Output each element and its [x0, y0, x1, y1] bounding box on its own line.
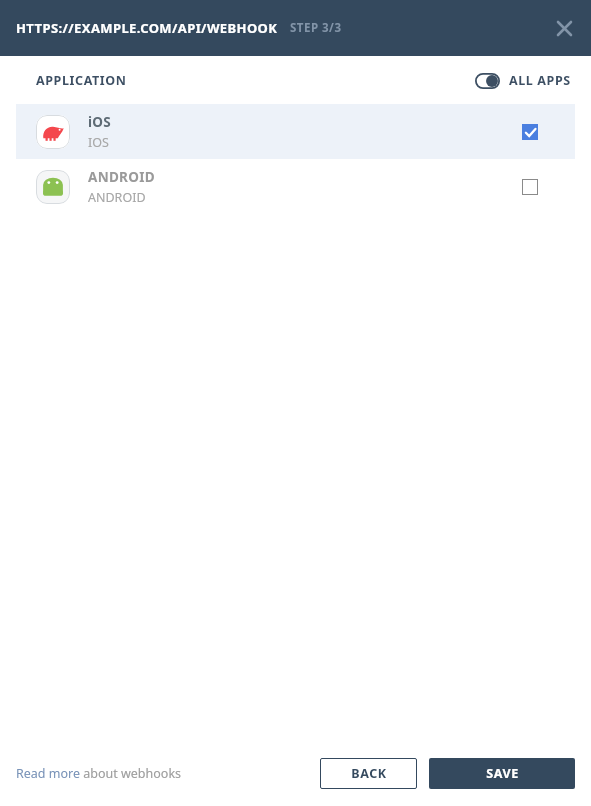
staticText: BACK — [351, 765, 387, 782]
staticText: ALL APPS — [509, 72, 571, 89]
button[interactable]: Not selected — [513, 170, 547, 204]
button[interactable]: BACK — [320, 758, 417, 789]
button[interactable]: SAVE — [429, 758, 575, 789]
button[interactable]: Close — [547, 11, 581, 45]
button[interactable]: ANDROID — [16, 159, 575, 214]
staticText: ANDROID — [88, 189, 146, 206]
staticText: ANDROID — [88, 168, 155, 186]
button[interactable]: Read more about webhooks — [16, 765, 182, 782]
button[interactable]: iOS — [16, 104, 575, 159]
button[interactable]: Selected — [513, 115, 547, 149]
button[interactable]: ALL APPS — [471, 66, 575, 95]
staticText: IOS — [88, 134, 109, 151]
staticText: HTTPS://EXAMPLE.COM/API/WEBHOOK — [16, 19, 278, 37]
staticText: APPLICATION — [36, 72, 127, 89]
staticText: STEP 3/3 — [290, 20, 342, 36]
staticText: SAVE — [486, 765, 519, 782]
staticText: iOS — [88, 113, 112, 131]
staticText: Read more about webhooks — [16, 765, 182, 782]
